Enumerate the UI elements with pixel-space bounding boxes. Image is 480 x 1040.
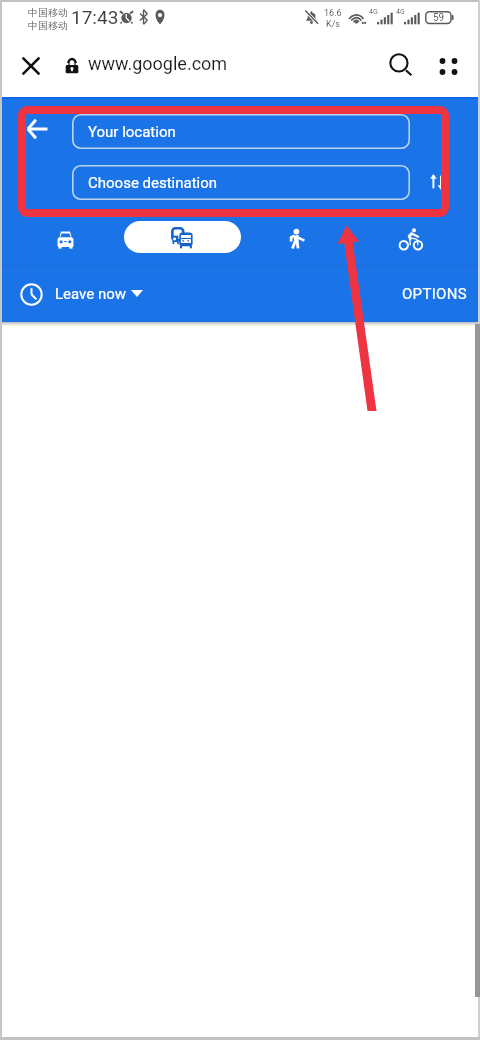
staticText: 16.6 [324,8,342,19]
button[interactable]: Search [379,44,423,88]
staticText: 中国移动 [28,19,68,32]
button[interactable]: Back [13,105,61,153]
staticText: 4G [396,8,405,16]
staticText: K/s [326,19,341,30]
button[interactable]: Cycling [389,217,433,261]
button[interactable]: More options [426,44,470,88]
button[interactable]: Close tab [9,44,53,88]
staticText: Your location [88,123,176,141]
button[interactable]: Driving [43,217,87,261]
button[interactable]: Your location [72,114,410,149]
button[interactable]: Choose destination [72,165,410,200]
staticText: Choose destination [88,174,218,192]
button[interactable]: OPTIONS [391,270,477,318]
button[interactable]: Walking [274,217,318,261]
staticText: Leave now [55,285,127,303]
staticText: 4G [369,8,378,16]
staticText: 中国移动 [28,6,68,19]
button[interactable]: Leave now [0,266,160,322]
staticText: OPTIONS [402,285,467,303]
staticText: 17:43 [71,6,119,28]
button[interactable]: Transit [124,221,241,253]
staticText: www.google.com [88,53,228,74]
staticText: 59 [433,12,445,24]
